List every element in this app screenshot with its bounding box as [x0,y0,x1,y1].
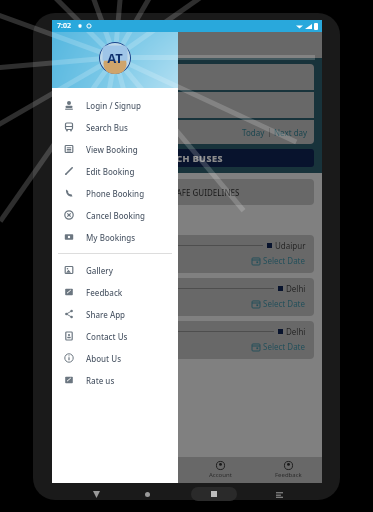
staticText: Edit Booking [86,166,135,177]
staticText: View Booking [86,144,138,155]
button[interactable]: About Us [52,347,178,369]
staticText: About Us [86,353,122,364]
staticText: Gallery [86,265,113,276]
button[interactable]: Share App [52,303,178,325]
button[interactable]: Search Bus [52,116,178,138]
staticText: Search Bus [86,122,128,133]
button[interactable]: View Booking [52,138,178,160]
staticText: SEARCH BUSES [152,152,223,164]
button[interactable]: Jaipur [60,278,314,316]
staticText: COVID 19 SAFE GUIDELINES [134,187,240,198]
staticText: My Bookings [86,232,136,243]
button[interactable]: Keyboard [272,487,286,501]
button[interactable]: Login / Signup [52,94,178,116]
staticText: Popular routes [62,212,166,231]
button[interactable]: Cancel Booking [52,204,178,226]
button[interactable]: Rate us [52,369,178,391]
staticText: Jaipur [76,283,98,294]
button[interactable]: SEARCH BUSES [60,149,314,167]
staticText: Today [242,127,265,138]
button[interactable]: Agra [60,321,314,359]
button[interactable]: Contact Us [52,325,178,347]
button[interactable] [60,92,314,118]
button[interactable] [60,64,314,90]
button[interactable]: Gallery [52,259,178,281]
button[interactable]: My Bookings [52,226,178,248]
staticText: Delhi [286,283,306,294]
button[interactable]: Home [139,486,155,502]
button[interactable]: Back [88,486,104,502]
staticText: Next day [274,127,308,138]
button[interactable]: Today [60,120,314,144]
staticText: Select Date [263,298,306,309]
staticText: Contact Us [86,331,128,342]
staticText: Select Date [263,255,306,266]
staticText: Agra [76,326,94,337]
staticText: Login / Signup [86,100,142,111]
staticText: Phone Booking [86,188,145,199]
staticText: AT [107,49,123,67]
button[interactable]: Recents [191,487,237,501]
staticText: Share App [86,309,126,320]
staticText: Feedback [86,287,123,298]
staticText: Select Date [263,341,306,352]
staticText: Cancel Booking [86,210,146,221]
button[interactable]: Account [186,457,254,483]
button[interactable]: Feedback [52,281,178,303]
staticText: Feedback [275,471,302,479]
staticText: 7:02 [57,21,71,31]
button[interactable]: Edit Booking [52,160,178,182]
staticText: Jaipur [76,240,98,251]
staticText: Udaipur [275,240,306,251]
button[interactable]: Search [119,457,186,483]
button[interactable]: Phone Booking [52,182,178,204]
staticText: Delhi [286,326,306,337]
button[interactable]: COVID 19 SAFE GUIDELINES [60,179,314,205]
staticText: Account [209,471,232,479]
button[interactable]: Feedback [254,457,322,483]
staticText: Rate us [86,375,115,386]
button[interactable]: Jaipur [60,235,314,273]
